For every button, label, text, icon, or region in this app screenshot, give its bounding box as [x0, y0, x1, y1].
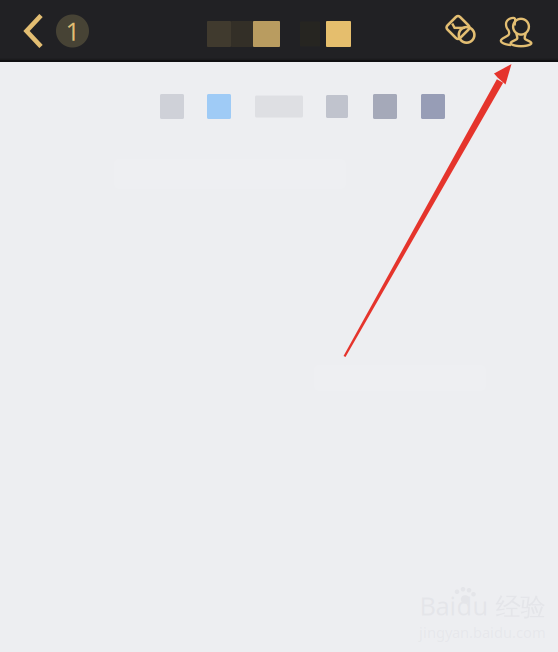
staticText: 1 [65, 14, 79, 48]
button[interactable]: Recent [437, 0, 492, 62]
button[interactable]: Contacts [492, 0, 542, 62]
button[interactable]: Back [0, 0, 99, 62]
staticText: Baidu 经验 [419, 589, 545, 623]
